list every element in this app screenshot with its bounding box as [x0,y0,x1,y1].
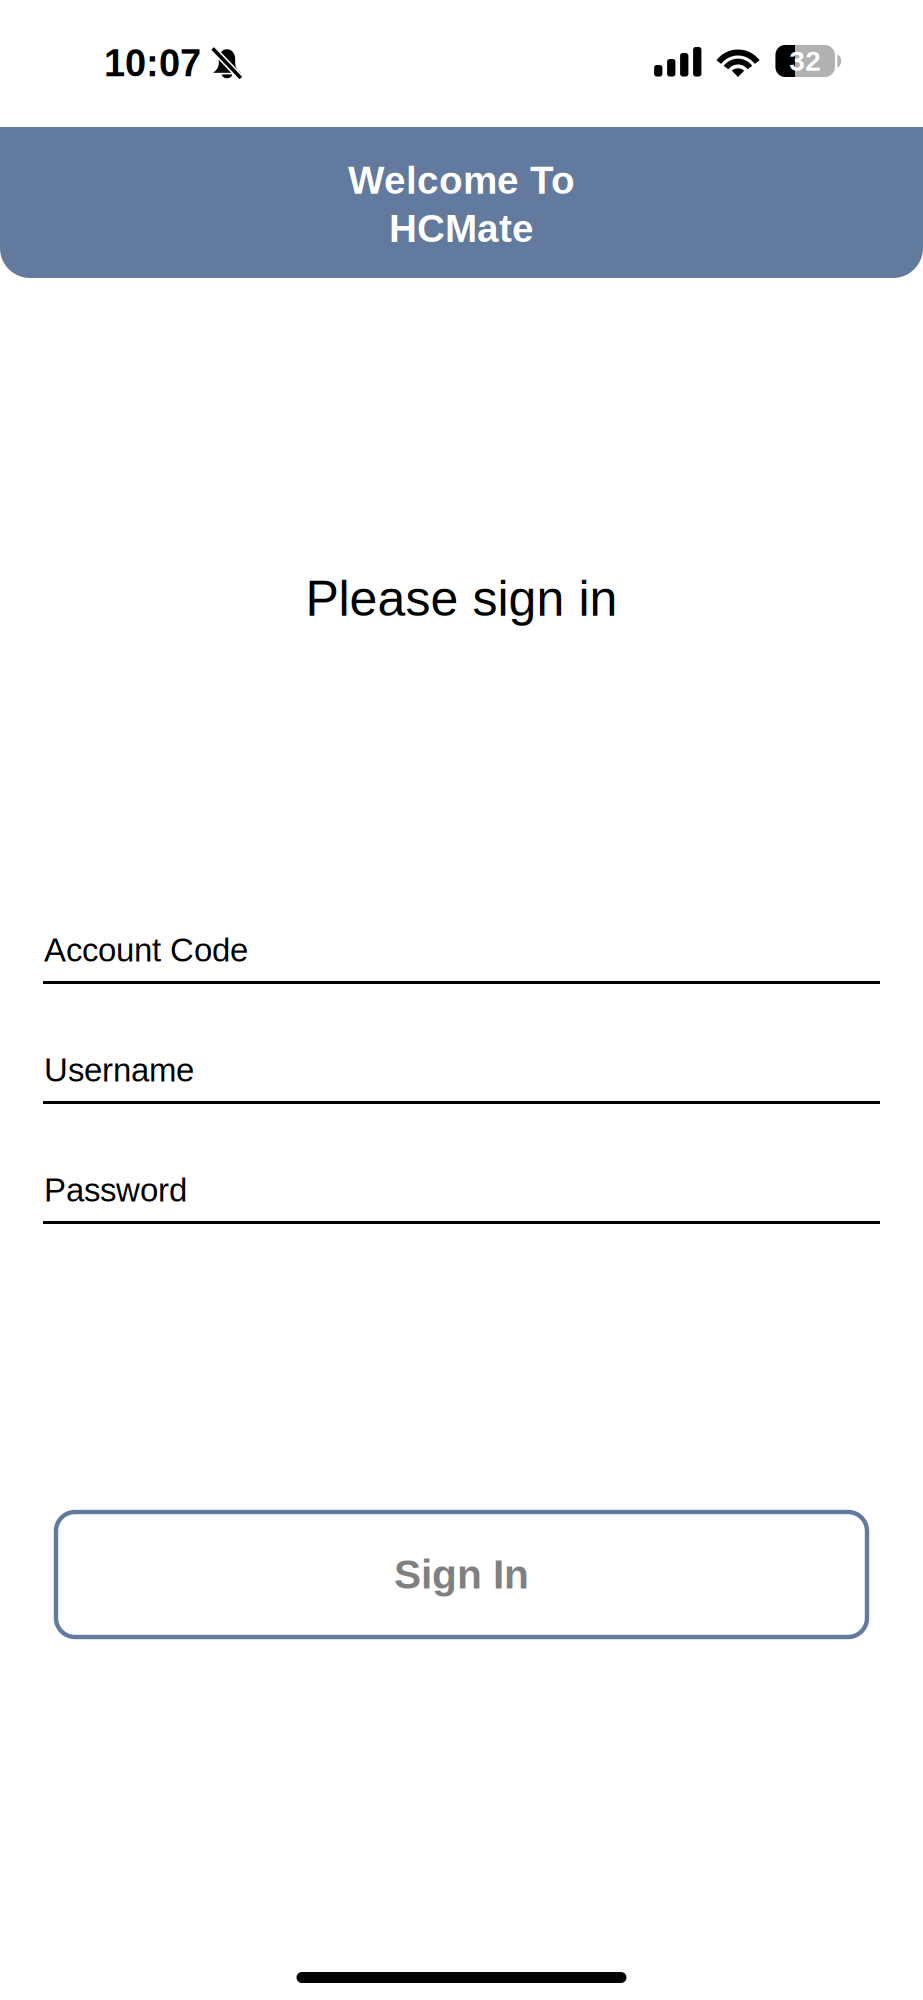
staticText: Password [44,1172,187,1208]
staticText: Welcome To [348,159,575,202]
staticText: 10:07 [104,42,201,84]
staticText: Username [44,1052,194,1088]
staticText: 32 [789,45,821,77]
staticText: Please sign in [305,571,617,626]
button[interactable]: Password [43,1177,880,1224]
button[interactable]: Username [43,1057,880,1104]
button[interactable]: Account Code [43,937,880,984]
staticText: Account Code [44,932,248,968]
staticText: HCMate [389,207,534,250]
button[interactable]: Sign In [56,1512,867,1637]
staticText: Sign In [394,1552,529,1597]
